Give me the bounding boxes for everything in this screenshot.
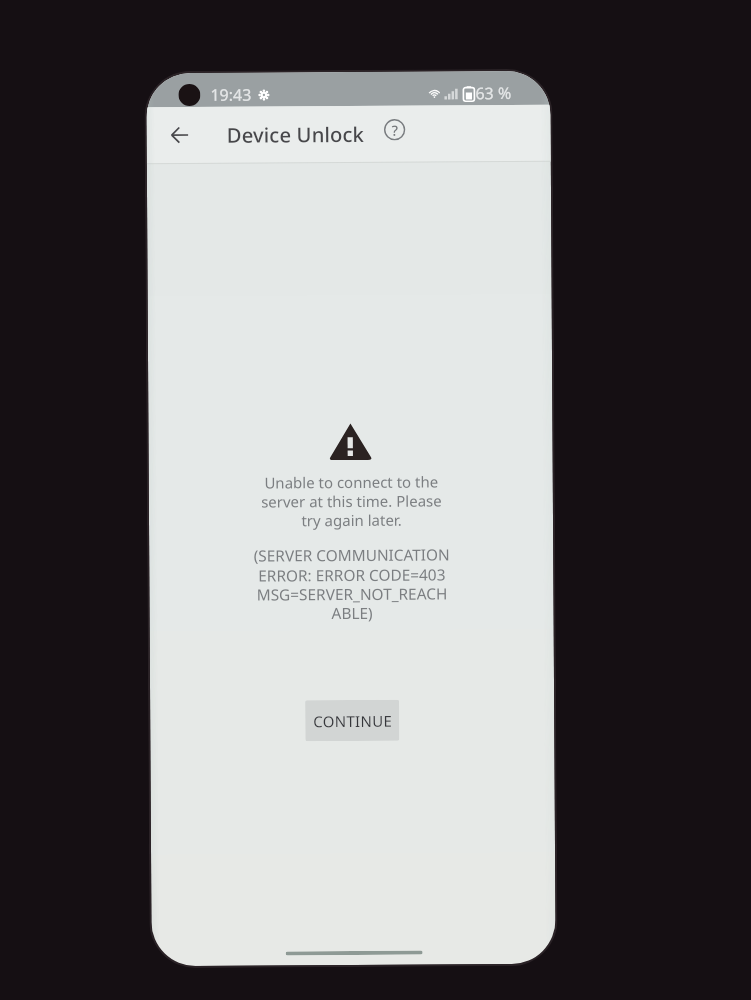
staticText: ?: [392, 121, 399, 140]
button[interactable]: Help: [372, 108, 417, 152]
staticText: 63 %: [475, 82, 511, 104]
staticText: Device Unlock: [227, 120, 365, 149]
staticText: 19:43: [210, 84, 251, 106]
staticText: Unable to connect to the server at this …: [261, 471, 442, 530]
staticText: CONTINUE: [313, 711, 392, 731]
button[interactable]: Back: [157, 113, 202, 157]
button[interactable]: CONTINUE: [305, 700, 399, 741]
staticText: (SERVER COMMUNICATION ERROR: ERROR CODE=…: [253, 544, 451, 624]
